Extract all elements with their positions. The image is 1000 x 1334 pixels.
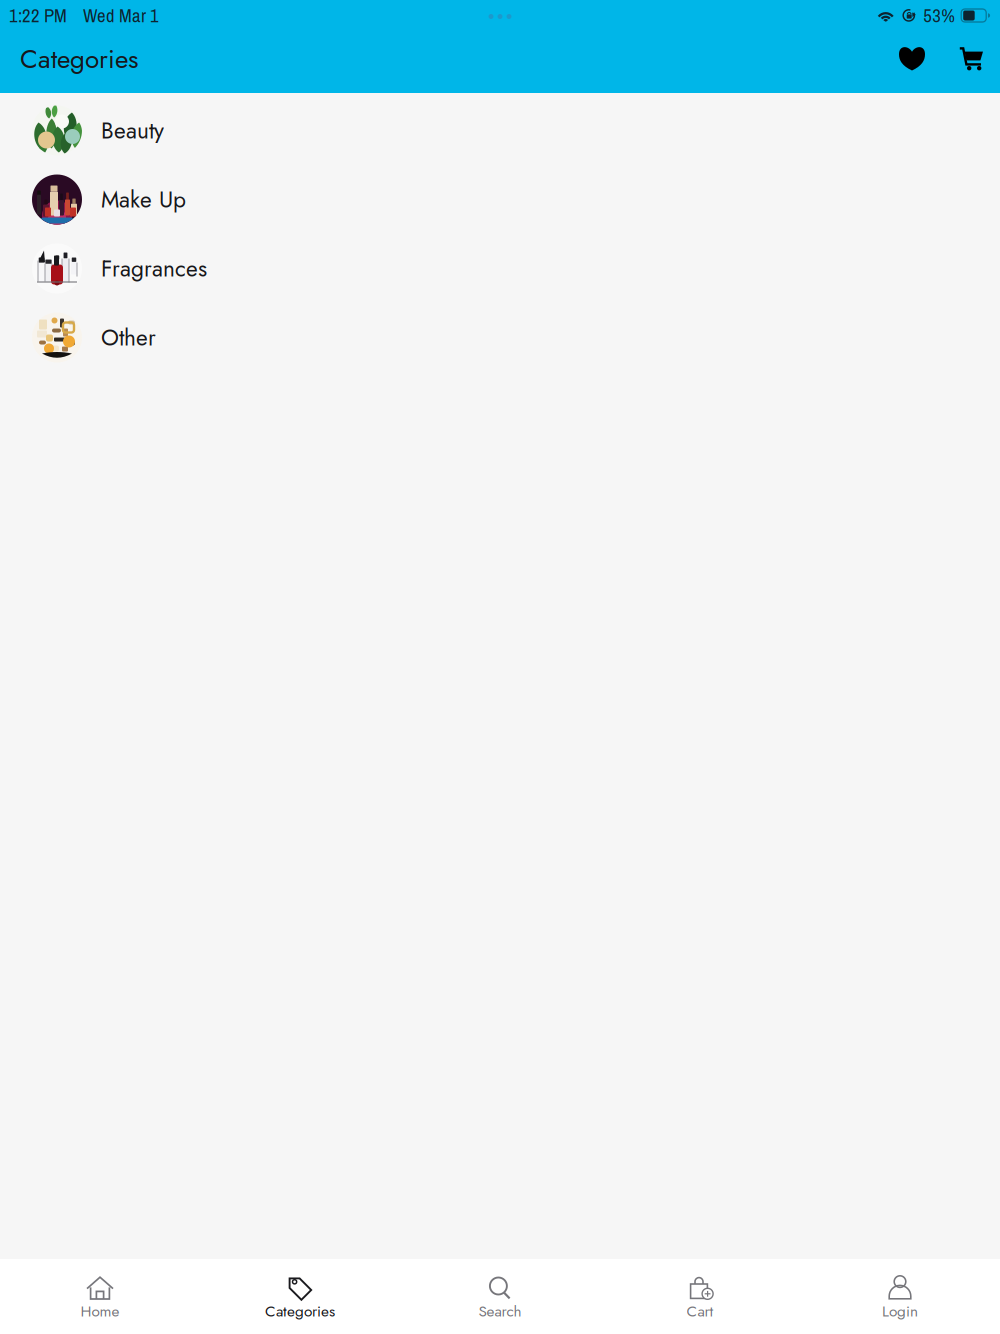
- staticText: 53%: [923, 3, 955, 28]
- button[interactable]: Cart: [600, 1259, 800, 1334]
- staticText: Cart: [686, 1300, 713, 1322]
- button[interactable]: Beauty: [0, 96, 1000, 165]
- button[interactable]: Shopping cart: [949, 37, 993, 81]
- staticText: Categories: [20, 40, 138, 78]
- button[interactable]: Fragrances: [0, 234, 1000, 303]
- staticText: Categories: [265, 1300, 335, 1322]
- staticText: Other: [101, 321, 156, 354]
- button[interactable]: Login: [800, 1259, 1000, 1334]
- staticText: Home: [80, 1300, 119, 1322]
- staticText: Login: [882, 1300, 918, 1322]
- button[interactable]: Make Up: [0, 165, 1000, 234]
- staticText: 1:22 PM: [9, 3, 67, 28]
- button[interactable]: Home: [0, 1259, 200, 1334]
- staticText: Beauty: [101, 114, 164, 147]
- staticText: Make Up: [101, 183, 186, 216]
- button[interactable]: Other: [0, 303, 1000, 372]
- staticText: Search: [478, 1300, 521, 1322]
- staticText: Wed Mar 1: [83, 3, 159, 28]
- button[interactable]: Categories: [200, 1259, 400, 1334]
- button[interactable]: Favorites: [890, 37, 934, 81]
- staticText: Fragrances: [101, 252, 207, 285]
- button[interactable]: Search: [400, 1259, 600, 1334]
